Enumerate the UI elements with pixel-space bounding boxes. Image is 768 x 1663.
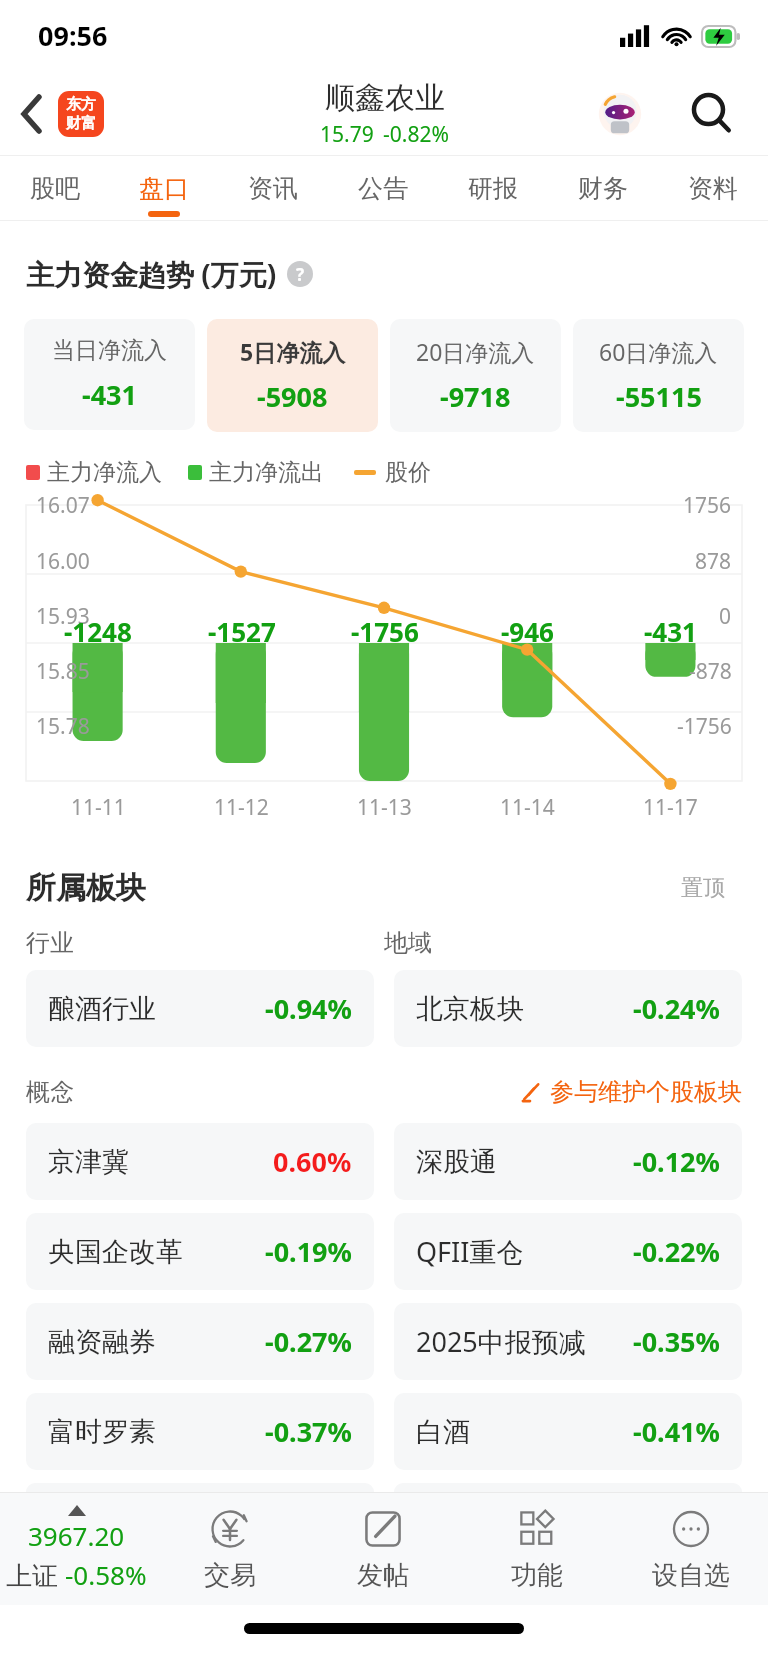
staticText: -0.37% [265, 1413, 352, 1450]
button[interactable]: 财务 [548, 156, 658, 220]
staticText: 参与维护个股板块 [550, 1077, 742, 1107]
staticText: 16.00 [36, 547, 90, 576]
staticText: 财富 [66, 114, 96, 133]
button[interactable]: 功能 [460, 1493, 614, 1605]
staticText: 置顶 [681, 874, 725, 902]
staticText: 15.85 [36, 657, 90, 686]
staticText: -0.27% [265, 1323, 352, 1360]
staticText: 交易 [204, 1559, 256, 1592]
staticText: 盘口 [139, 173, 189, 204]
staticText: 功能 [511, 1559, 563, 1592]
button[interactable]: 交易 [153, 1493, 306, 1605]
staticText: 15.93 [36, 602, 90, 631]
button[interactable]: 酿酒行业 [26, 970, 374, 1047]
button[interactable]: 参与维护个股板块 [519, 1073, 742, 1111]
staticText: 地域 [384, 928, 742, 958]
staticText: 财务 [578, 173, 628, 204]
staticText: 15.79 [320, 120, 374, 149]
staticText: 股吧 [30, 173, 80, 204]
button[interactable]: 北京板块 [394, 970, 742, 1047]
staticText: -431 [644, 614, 697, 649]
button[interactable]: Help [287, 261, 313, 287]
button[interactable]: 融资融券 [26, 1303, 374, 1380]
staticText: -0.12% [633, 1143, 720, 1180]
button[interactable]: 发帖 [306, 1493, 460, 1605]
button[interactable]: 当日净流入 [24, 319, 195, 430]
staticText: 白酒 [416, 1415, 470, 1449]
button[interactable]: 置顶 [664, 866, 742, 910]
button[interactable]: 央国企改革 [26, 1213, 374, 1290]
staticText: 发帖 [357, 1559, 409, 1592]
staticText: 0 [719, 602, 732, 631]
staticText: -1756 [351, 614, 419, 649]
staticText: 3967.20 [28, 1518, 125, 1553]
staticText: 设自选 [652, 1559, 730, 1592]
staticText: -0.82% [383, 120, 449, 149]
button[interactable]: 5日净流入 [207, 319, 378, 432]
staticText: 顺鑫农业 [325, 79, 445, 117]
staticText: -1756 [677, 712, 732, 741]
staticText: -1248 [64, 614, 132, 649]
staticText: -1527 [208, 614, 276, 649]
staticText: 1756 [683, 491, 732, 520]
staticText: -431 [82, 376, 137, 413]
staticText: 11-13 [357, 793, 412, 822]
staticText: -878 [689, 657, 732, 686]
button[interactable]: 资料 [658, 156, 768, 220]
staticText: 11-14 [500, 793, 555, 822]
staticText: 20日净流入 [416, 336, 535, 367]
staticText: 资讯 [248, 173, 298, 204]
staticText: 所属板块 [26, 869, 146, 907]
button[interactable]: East Money logo [58, 91, 104, 137]
button[interactable]: AI assistant [594, 88, 646, 140]
staticText: 融资融券 [48, 1325, 156, 1359]
staticText: -5908 [257, 378, 328, 415]
staticText: ? [296, 263, 305, 286]
staticText: 酿酒行业 [48, 992, 156, 1026]
staticText: -55115 [616, 378, 702, 415]
button[interactable]: 富时罗素 [26, 1393, 374, 1470]
staticText: -0.24% [633, 990, 720, 1027]
staticText: 研报 [468, 173, 518, 204]
button[interactable]: 20日净流入 [390, 319, 561, 432]
staticText: 北京板块 [416, 992, 524, 1026]
staticText: 央国企改革 [48, 1235, 183, 1269]
button[interactable]: 资讯 [218, 156, 328, 220]
staticText: -0.35% [633, 1323, 720, 1360]
staticText: 概念 [26, 1077, 74, 1107]
staticText: 主力资金趋势 (万元) [26, 255, 277, 293]
staticText: 16.07 [36, 491, 90, 520]
button[interactable]: 公告 [328, 156, 438, 220]
button[interactable]: 盘口 [109, 156, 218, 220]
staticText: 上证 [6, 1557, 65, 1593]
button[interactable]: Back [10, 89, 54, 139]
staticText: 11-17 [643, 793, 698, 822]
button[interactable]: 3967.20 [0, 1493, 153, 1605]
staticText: 富时罗素 [48, 1415, 156, 1449]
staticText: 15.78 [36, 712, 90, 741]
button[interactable]: 白酒 [394, 1393, 742, 1470]
staticText: 当日净流入 [52, 336, 167, 365]
button[interactable]: 设自选 [614, 1493, 768, 1605]
button[interactable]: 京津冀 [26, 1123, 374, 1200]
staticText: -946 [501, 614, 554, 649]
staticText: -0.41% [633, 1413, 720, 1450]
button[interactable]: QFII重仓 [394, 1213, 742, 1290]
staticText: 主力净流出 [209, 458, 324, 487]
staticText: 60日净流入 [599, 336, 718, 367]
button[interactable]: 2025中报预减 [394, 1303, 742, 1380]
staticText: 公告 [358, 173, 408, 204]
staticText: 878 [695, 547, 732, 576]
staticText: -0.94% [265, 990, 352, 1027]
button[interactable]: 股吧 [0, 156, 109, 220]
button[interactable]: 研报 [438, 156, 548, 220]
staticText: 行业 [26, 928, 384, 958]
staticText: 5日净流入 [240, 336, 346, 367]
button[interactable]: 60日净流入 [573, 319, 744, 432]
staticText: 2025中报预减 [416, 1323, 586, 1360]
button[interactable]: 深股通 [394, 1123, 742, 1200]
staticText: -0.19% [265, 1233, 352, 1270]
staticText: 深股通 [416, 1145, 497, 1179]
staticText: 资料 [688, 173, 738, 204]
button[interactable]: Search [682, 84, 742, 144]
